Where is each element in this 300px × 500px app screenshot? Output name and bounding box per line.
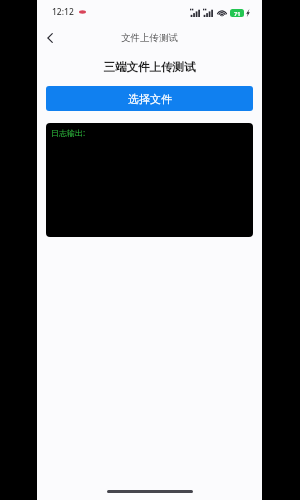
staticText: 日志输出:: [51, 127, 86, 138]
staticText: 三端文件上传测试: [37, 60, 262, 74]
staticText: 文件上传测试: [121, 32, 178, 44]
staticText: 12:12: [52, 6, 74, 18]
button[interactable]: Back: [41, 29, 59, 47]
staticText: 71: [234, 10, 241, 17]
staticText: 选择文件: [128, 92, 172, 106]
button[interactable]: 选择文件: [46, 86, 253, 111]
